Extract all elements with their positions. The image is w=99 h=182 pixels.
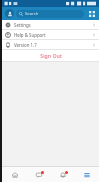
button[interactable]: Version 1.7 <box>2 40 99 49</box>
staticText: Settings <box>14 22 31 28</box>
button[interactable]: Search <box>16 10 84 18</box>
button[interactable]: Notifications <box>51 167 75 182</box>
staticText: Help & Support <box>14 32 46 38</box>
staticText: Version 1.7 <box>14 42 37 48</box>
button[interactable]: Help & Support <box>2 30 99 39</box>
button[interactable]: Messages <box>27 167 51 182</box>
button[interactable]: Settings <box>2 20 99 29</box>
staticText: Sign Out <box>40 52 62 59</box>
button[interactable]: Sign Out <box>2 50 99 61</box>
button[interactable]: More <box>75 167 99 182</box>
button[interactable]: Account <box>5 9 14 18</box>
button[interactable]: Home <box>2 167 27 182</box>
staticText: Search <box>25 11 39 17</box>
button[interactable]: Apps grid <box>87 9 96 18</box>
